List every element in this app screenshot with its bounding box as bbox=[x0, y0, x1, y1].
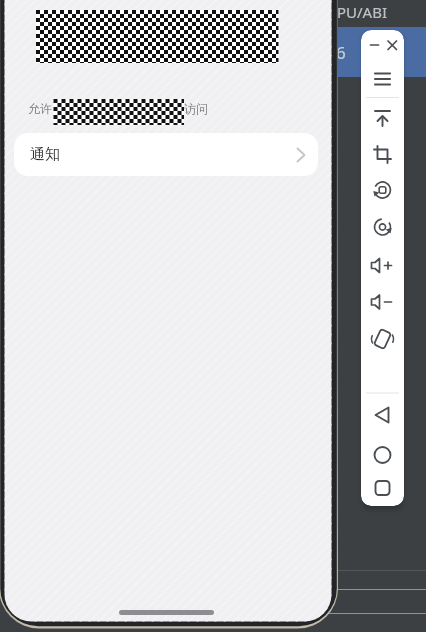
button[interactable] bbox=[368, 325, 397, 353]
staticText: 允许 bbox=[28, 101, 52, 116]
button[interactable] bbox=[368, 176, 397, 204]
staticText: PU/ABI bbox=[337, 2, 388, 22]
button[interactable] bbox=[368, 251, 397, 279]
button[interactable] bbox=[364, 36, 382, 54]
button[interactable] bbox=[368, 213, 397, 241]
button[interactable] bbox=[368, 474, 397, 502]
button[interactable] bbox=[368, 65, 397, 93]
staticText: 6 bbox=[336, 41, 346, 64]
staticText: 访问 bbox=[184, 101, 208, 116]
staticText: 通知 bbox=[30, 145, 60, 164]
button[interactable] bbox=[368, 103, 397, 131]
button[interactable] bbox=[368, 140, 397, 168]
button[interactable]: 通知 bbox=[14, 133, 318, 176]
button[interactable] bbox=[368, 288, 397, 316]
button[interactable] bbox=[368, 401, 397, 429]
button[interactable] bbox=[368, 441, 397, 469]
button[interactable] bbox=[383, 36, 401, 54]
